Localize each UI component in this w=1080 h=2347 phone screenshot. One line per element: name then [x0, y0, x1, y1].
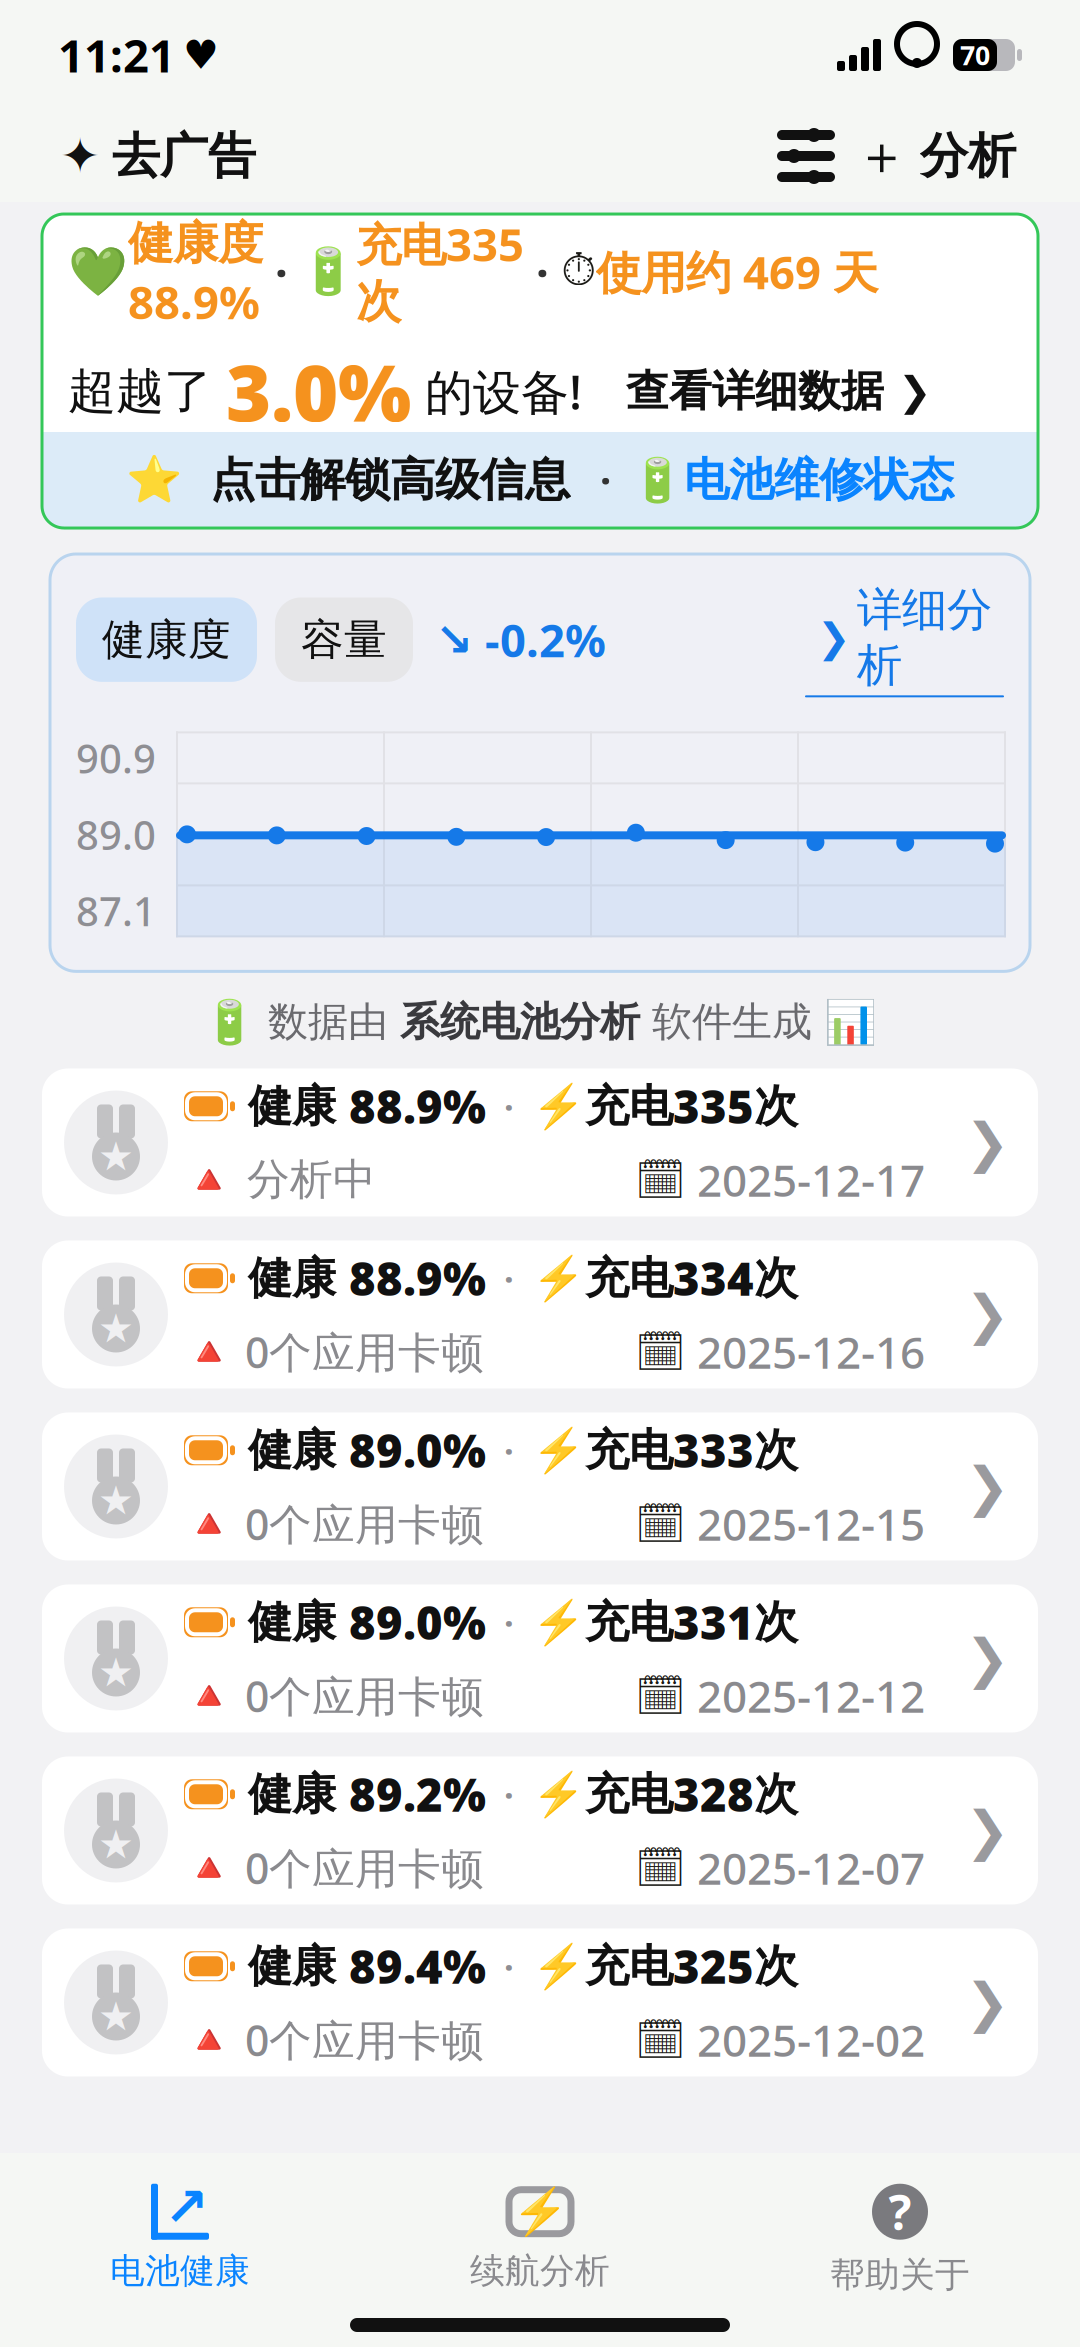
button[interactable]: ★: [42, 1412, 1038, 1560]
button[interactable]: ★: [42, 1068, 1038, 1216]
staticText: 健康: [235, 1079, 349, 1133]
staticText: 详细分析: [857, 582, 992, 693]
staticText: 充电335次: [356, 214, 524, 330]
staticText: 🔋: [631, 456, 684, 504]
button[interactable]: 健康度: [76, 597, 257, 682]
button[interactable]: ★: [42, 1240, 1038, 1388]
staticText: 的设备!: [411, 359, 582, 423]
staticText: 89.2%: [349, 1764, 486, 1824]
staticText: 🔺: [184, 1329, 234, 1374]
staticText: ⚡️: [532, 1254, 585, 1303]
staticText: 次: [754, 1423, 798, 1477]
staticText: 0个应用卡顿: [234, 2011, 484, 2068]
staticText: 2025-12-16: [686, 1322, 925, 1381]
staticText: 90.9: [76, 731, 156, 784]
staticText: 🗓: [635, 1673, 686, 1718]
staticText: 健康: [235, 1767, 349, 1821]
staticText: 🗓: [635, 1329, 686, 1374]
staticText: 健康度 88.9%: [128, 211, 263, 332]
staticText: 🔺: [184, 1673, 234, 1718]
staticText: 超越了: [68, 362, 226, 421]
staticText: 健康: [235, 1939, 349, 1993]
staticText: 333: [673, 1420, 754, 1480]
staticText: ★: [98, 1822, 134, 1867]
staticText: ·: [486, 1599, 532, 1645]
staticText: 💚: [68, 244, 128, 299]
staticText: ❯: [817, 615, 851, 660]
staticText: 容量: [301, 613, 387, 666]
staticText: 88.9%: [349, 1248, 486, 1308]
staticText: 充电: [585, 1939, 673, 1993]
button[interactable]: 容量: [275, 597, 413, 682]
staticText: ★: [98, 1134, 134, 1179]
staticText: 2025-12-07: [686, 1838, 925, 1897]
staticText: 电池维修状态: [684, 452, 954, 508]
staticText: 软件生成: [640, 997, 824, 1046]
button[interactable]: ?: [720, 2180, 1080, 2296]
staticText: 🗓: [635, 1157, 686, 1202]
staticText: ♥: [183, 32, 219, 78]
button[interactable]: ✦: [54, 116, 262, 195]
staticText: 数据由: [256, 997, 400, 1046]
staticText: 11:21: [58, 25, 175, 85]
button[interactable]: 筛选设置: [767, 121, 845, 191]
button[interactable]: 超越了: [68, 340, 932, 443]
staticText: 使用约 469 天: [596, 242, 878, 302]
staticText: 充电: [585, 1251, 673, 1305]
staticText: ❯: [965, 1112, 1010, 1173]
staticText: ⚡️: [532, 1770, 585, 1819]
button[interactable]: ⭐️: [42, 432, 1038, 528]
staticText: 0个应用卡顿: [234, 1839, 484, 1896]
staticText: 🗓: [635, 2017, 686, 2062]
staticText: ❯: [884, 368, 932, 414]
staticText: 续航分析: [470, 2250, 610, 2292]
staticText: ❯: [965, 1800, 1010, 1861]
staticText: ✦: [60, 129, 100, 183]
staticText: ＋: [855, 123, 908, 189]
staticText: ⚡️: [532, 1082, 585, 1131]
staticText: ↘: [435, 614, 473, 665]
staticText: ⚡️: [532, 1598, 585, 1647]
staticText: 88.9%: [349, 1076, 486, 1136]
staticText: 89.0%: [349, 1420, 486, 1480]
staticText: 充电: [585, 1079, 673, 1133]
staticText: 2025-12-02: [686, 2010, 925, 2069]
button[interactable]: ★: [42, 1928, 1038, 2076]
staticText: 325: [673, 1936, 754, 1996]
staticText: 🔺: [184, 1501, 234, 1546]
staticText: 帮助关于: [830, 2254, 970, 2296]
staticText: 334: [673, 1248, 754, 1308]
staticText: 87.1: [76, 884, 156, 937]
staticText: ★: [98, 1306, 134, 1351]
staticText: 328: [673, 1764, 754, 1824]
staticText: ·: [524, 242, 561, 302]
staticText: 0个应用卡顿: [234, 1667, 484, 1724]
staticText: ⚡: [512, 2186, 568, 2238]
button[interactable]: ↗: [0, 2184, 360, 2292]
staticText: 🔋: [300, 246, 356, 298]
staticText: ❯: [965, 1456, 1010, 1517]
staticText: 次: [754, 1595, 798, 1649]
staticText: ·: [570, 453, 631, 506]
staticText: 0个应用卡顿: [234, 1495, 484, 1552]
staticText: ·: [486, 1427, 532, 1473]
button[interactable]: ❯: [805, 582, 1004, 697]
staticText: ❯: [965, 1284, 1010, 1345]
staticText: ?: [888, 2180, 911, 2243]
staticText: ⚡️: [532, 1942, 585, 1991]
staticText: 次: [754, 1251, 798, 1305]
button[interactable]: ★: [42, 1584, 1038, 1732]
staticText: 次: [754, 1767, 798, 1821]
staticText: 分析: [920, 126, 1016, 185]
staticText: 2025-12-15: [686, 1494, 925, 1553]
staticText: ·: [486, 1943, 532, 1989]
staticText: ★: [98, 1650, 134, 1695]
staticText: ❯: [965, 1972, 1010, 2033]
button[interactable]: ★: [42, 1756, 1038, 1904]
staticText: 次: [754, 1939, 798, 1993]
staticText: ❯: [965, 1628, 1010, 1689]
staticText: 健康: [235, 1251, 349, 1305]
button[interactable]: ＋: [845, 113, 1026, 199]
staticText: ★: [98, 1478, 134, 1523]
button[interactable]: ⚡: [360, 2184, 720, 2292]
